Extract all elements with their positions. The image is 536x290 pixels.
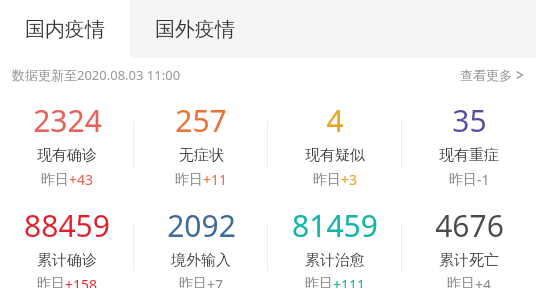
staticText: +3: [341, 170, 358, 189]
staticText: 现有重症: [439, 146, 499, 165]
staticText: 昨日: [41, 171, 69, 189]
staticText: 昨日: [449, 171, 477, 189]
staticText: +7: [207, 275, 224, 288]
staticText: 昨日: [313, 171, 341, 189]
staticText: 境外输入: [171, 251, 231, 270]
staticText: 35: [452, 100, 487, 141]
button[interactable]: 88459: [0, 203, 134, 290]
button[interactable]: 查看更多: [460, 67, 524, 83]
staticText: +43: [69, 170, 94, 189]
staticText: 81459: [292, 205, 378, 246]
button[interactable]: 35: [402, 98, 536, 191]
staticText: +111: [333, 275, 366, 288]
staticText: 累计死亡: [439, 251, 499, 270]
button[interactable]: 81459: [268, 203, 402, 290]
staticText: 现有确诊: [37, 146, 97, 165]
staticText: 无症状: [179, 146, 224, 165]
staticText: 257: [175, 100, 227, 141]
button[interactable]: 257: [134, 98, 268, 191]
staticText: 2092: [167, 205, 236, 246]
staticText: 昨日: [179, 275, 207, 288]
staticText: 昨日: [305, 275, 333, 288]
button[interactable]: 4: [268, 98, 402, 191]
staticText: 累计治愈: [305, 251, 365, 270]
staticText: 累计确诊: [37, 251, 97, 270]
staticText: 数据更新至2020.08.03 11:00: [12, 66, 181, 84]
staticText: -1: [477, 170, 490, 189]
staticText: 4: [326, 100, 344, 141]
staticText: +11: [203, 170, 228, 189]
button[interactable]: 国内疫情: [0, 0, 130, 58]
button[interactable]: 国外疫情: [130, 0, 260, 58]
staticText: 4676: [435, 205, 504, 246]
staticText: +4: [475, 275, 492, 288]
staticText: +158: [65, 275, 98, 288]
button[interactable]: 2092: [134, 203, 268, 290]
button[interactable]: 2324: [0, 98, 134, 191]
button[interactable]: 4676: [402, 203, 536, 290]
staticText: 国内疫情: [25, 17, 105, 42]
staticText: 昨日: [175, 171, 203, 189]
staticText: 88459: [24, 205, 110, 246]
staticText: 昨日: [37, 275, 65, 288]
staticText: 国外疫情: [155, 17, 235, 42]
staticText: 查看更多: [460, 67, 512, 83]
staticText: 昨日: [447, 275, 475, 288]
staticText: 现有疑似: [305, 146, 365, 165]
staticText: 2324: [33, 100, 102, 141]
